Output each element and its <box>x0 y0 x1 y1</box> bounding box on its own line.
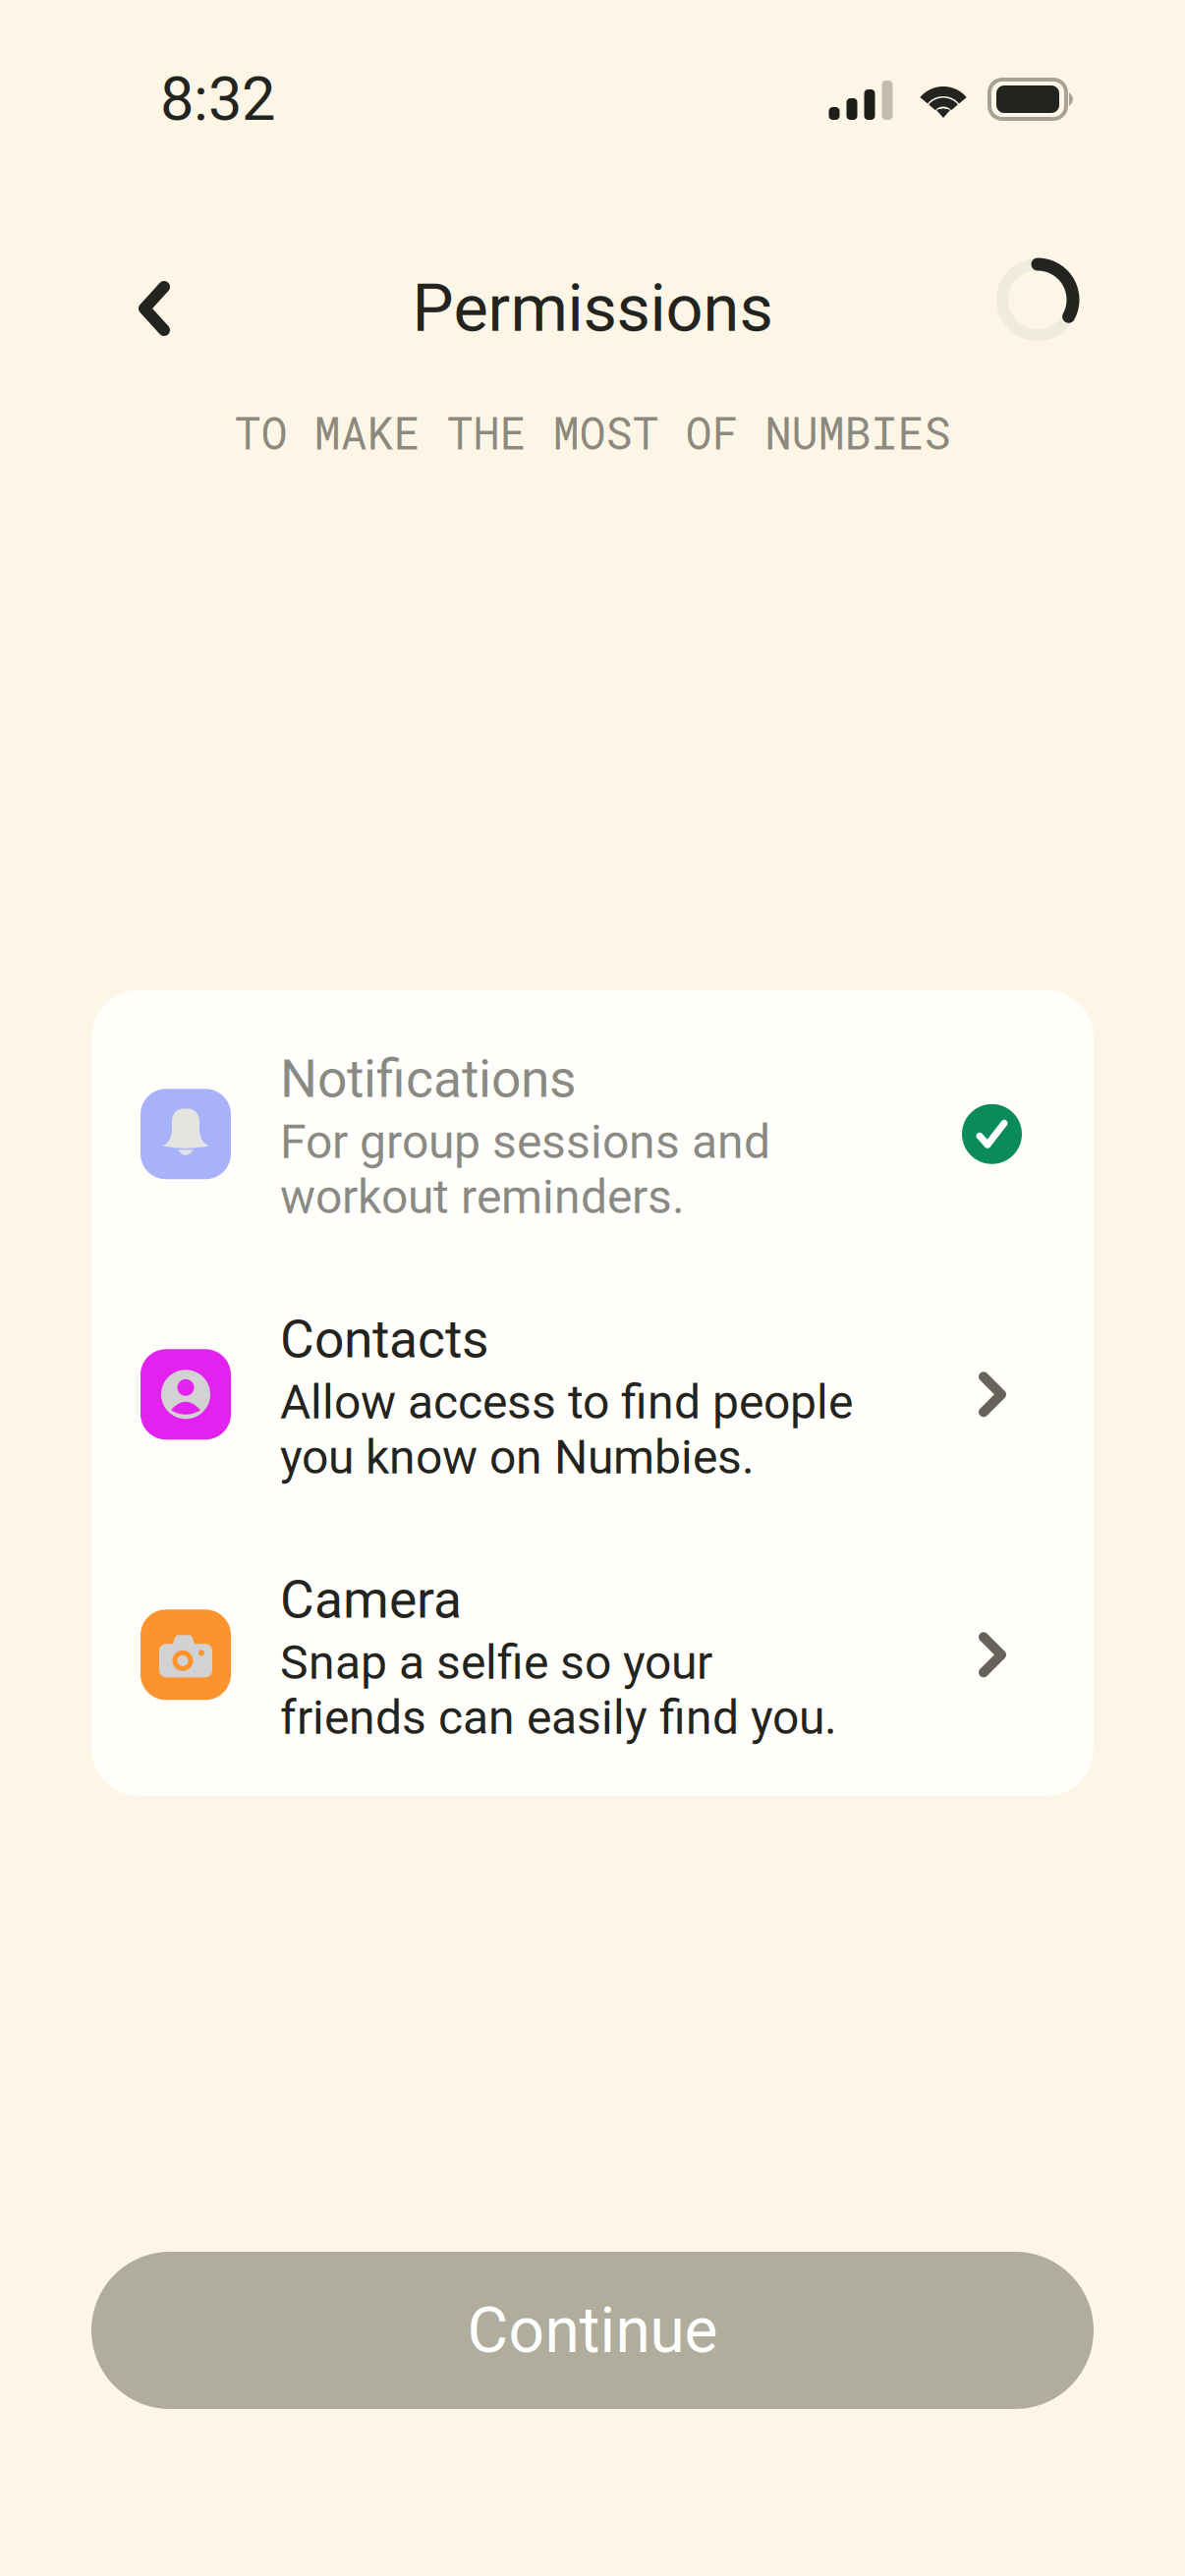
button[interactable]: Loading <box>973 254 1079 363</box>
staticText: workout reminders. <box>280 1169 685 1225</box>
staticText: you know on Numbies. <box>280 1430 755 1485</box>
staticText: Camera <box>280 1569 462 1630</box>
button[interactable]: Camera <box>91 1525 1094 1785</box>
staticText: Notifications <box>280 1048 577 1110</box>
button[interactable]: Back <box>138 254 244 363</box>
staticText: Permissions <box>412 270 773 347</box>
staticText: Allow access to find people <box>280 1375 853 1430</box>
button[interactable]: Notifications <box>91 1004 1094 1264</box>
staticText: For group sessions and <box>280 1114 770 1170</box>
staticText: 8:32 <box>160 64 275 135</box>
staticText: Snap a selfie so your <box>280 1635 712 1690</box>
staticText: TO MAKE THE MOST OF NUMBIES <box>234 403 951 462</box>
button[interactable]: Continue <box>91 2252 1094 2409</box>
staticText: friends can easily find you. <box>280 1690 837 1745</box>
staticText: Contacts <box>280 1309 489 1370</box>
staticText: Continue <box>467 2294 718 2367</box>
button[interactable]: Contacts <box>91 1264 1094 1525</box>
